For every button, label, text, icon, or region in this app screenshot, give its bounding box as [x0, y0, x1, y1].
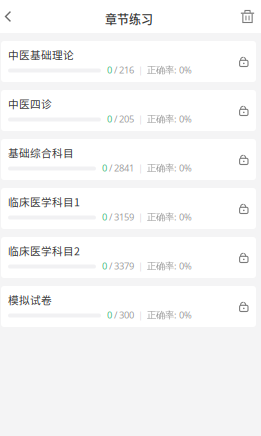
staticText: 0 — [102, 211, 107, 223]
staticText: 基础综合科目 — [8, 145, 74, 160]
staticText: / 3159 — [107, 211, 134, 223]
staticText: 模拟试卷 — [8, 292, 52, 307]
staticText: | — [138, 113, 143, 125]
button[interactable]: 临床医学科目1 — [0, 188, 261, 229]
button[interactable]: 临床医学科目2 — [0, 237, 261, 278]
button[interactable]: Back — [0, 0, 16, 33]
staticText: 中医四诊 — [8, 96, 52, 111]
staticText: 临床医学科目1 — [8, 194, 80, 209]
staticText: / 216 — [112, 64, 134, 76]
staticText: 临床医学科目2 — [8, 243, 80, 258]
staticText: 章节练习 — [105, 10, 153, 28]
staticText: | — [138, 260, 143, 272]
staticText: 正确率: 0% — [147, 64, 192, 76]
staticText: 正确率: 0% — [147, 260, 192, 272]
button[interactable]: 中医四诊 — [0, 90, 261, 131]
staticText: | — [138, 162, 143, 174]
staticText: 0 — [102, 260, 107, 272]
staticText: 正确率: 0% — [147, 162, 192, 174]
staticText: 正确率: 0% — [147, 113, 192, 125]
staticText: 0 — [107, 113, 112, 125]
staticText: / 205 — [112, 113, 134, 125]
staticText: / 3379 — [107, 260, 134, 272]
button[interactable]: 中医基础理论 — [0, 41, 261, 82]
staticText: 正确率: 0% — [147, 211, 192, 223]
staticText: | — [138, 309, 143, 321]
staticText: 中医基础理论 — [8, 47, 74, 62]
staticText: 0 — [102, 162, 107, 174]
button[interactable]: 模拟试卷 — [0, 286, 261, 327]
staticText: 0 — [107, 64, 112, 76]
staticText: | — [138, 64, 143, 76]
button[interactable]: 基础综合科目 — [0, 139, 261, 180]
button[interactable]: Delete — [234, 0, 261, 33]
staticText: / 2841 — [107, 162, 134, 174]
staticText: / 300 — [112, 309, 134, 321]
staticText: 正确率: 0% — [147, 309, 192, 321]
staticText: 0 — [107, 309, 112, 321]
staticText: | — [138, 211, 143, 223]
